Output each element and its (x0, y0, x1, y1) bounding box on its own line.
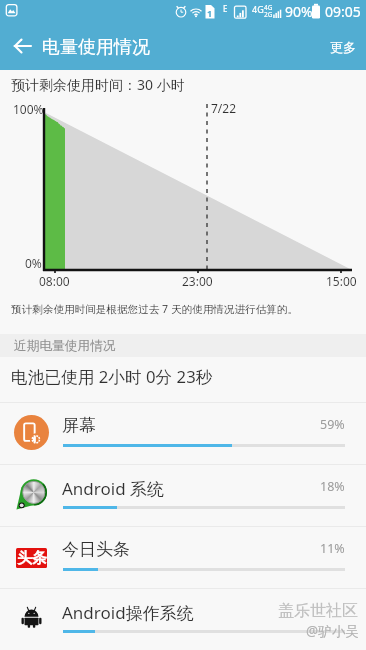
staticText: 18% (320, 478, 345, 495)
staticText: 0% (25, 255, 42, 271)
button[interactable]: Back (0, 24, 44, 68)
staticText: 09:05 (325, 2, 361, 21)
staticText: 电池已使用 2小时 0分 23秒 (11, 365, 213, 388)
button[interactable]: Android 系统 (0, 464, 366, 526)
staticText: Android 系统 (62, 477, 165, 500)
staticText: 4G (264, 3, 273, 12)
staticText: 电量使用情况 (42, 36, 150, 59)
staticText: 90% (285, 2, 313, 21)
staticText: E (223, 3, 228, 14)
staticText: Android操作系统 (62, 601, 194, 624)
staticText: 盖乐世社区 (278, 601, 358, 621)
staticText: 今日头条 (62, 539, 130, 560)
staticText: 头条 (17, 549, 47, 568)
staticText: 更多 (330, 39, 356, 55)
staticText: 59% (320, 416, 345, 433)
staticText: 屏幕 (62, 415, 96, 436)
staticText: 23:00 (182, 273, 213, 289)
staticText: 08:00 (39, 273, 70, 289)
button[interactable]: 更多 (321, 24, 365, 70)
staticText: 预计剩余使用时间是根据您过去 7 天的使用情况进行估算的。 (11, 302, 299, 316)
staticText: 2G (264, 10, 273, 19)
staticText: 7/22 (211, 100, 237, 116)
staticText: 1 (207, 7, 213, 19)
staticText: 100% (13, 101, 44, 117)
staticText: 4G (252, 3, 264, 15)
button[interactable]: Android操作系统 (0, 588, 366, 650)
staticText: 预计剩余使用时间：30 小时 (11, 75, 185, 94)
staticText: 15:00 (326, 273, 357, 289)
button[interactable]: 屏幕 (0, 402, 366, 464)
staticText: @驴小吴 (306, 622, 359, 640)
staticText: 11% (320, 540, 345, 557)
staticText: 近期电量使用情况 (14, 338, 116, 354)
button[interactable]: 头条 (0, 526, 366, 588)
